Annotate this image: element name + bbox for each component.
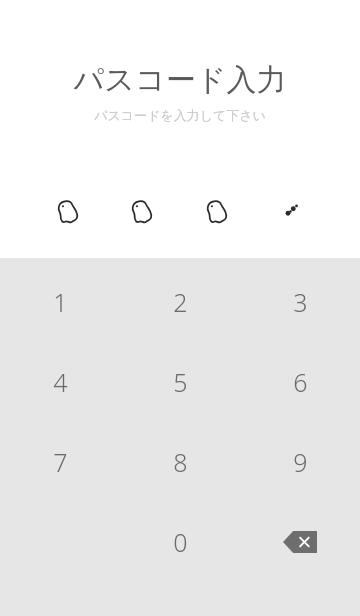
staticText: 0 xyxy=(173,525,188,559)
staticText: パスコード入力 xyxy=(0,61,360,99)
staticText: 4 xyxy=(53,365,68,399)
button[interactable]: 0 xyxy=(120,502,240,582)
staticText: 3 xyxy=(293,285,308,319)
staticText: 6 xyxy=(293,365,308,399)
button[interactable]: 2 xyxy=(120,262,240,342)
button[interactable]: 1 xyxy=(0,262,120,342)
staticText: 5 xyxy=(173,365,188,399)
button[interactable]: 9 xyxy=(240,422,360,502)
staticText: 9 xyxy=(293,445,308,479)
staticText: 7 xyxy=(53,445,68,479)
staticText: 8 xyxy=(173,445,188,479)
button[interactable]: 3 xyxy=(240,262,360,342)
button[interactable]: 7 xyxy=(0,422,120,502)
button[interactable]: Delete xyxy=(240,502,360,582)
staticText: 1 xyxy=(53,285,68,319)
button[interactable]: 8 xyxy=(120,422,240,502)
button[interactable]: 4 xyxy=(0,342,120,422)
button[interactable]: 5 xyxy=(120,342,240,422)
staticText: パスコードを入力して下さい xyxy=(0,107,360,123)
staticText: 2 xyxy=(173,285,188,319)
button[interactable]: 6 xyxy=(240,342,360,422)
